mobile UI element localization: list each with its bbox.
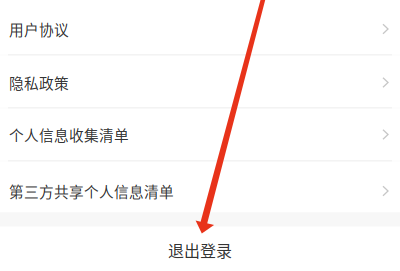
- staticText: 第三方共享个人信息清单: [9, 180, 174, 202]
- staticText: 用户协议: [9, 18, 69, 40]
- staticText: 隐私政策: [9, 72, 69, 93]
- button[interactable]: 第三方共享个人信息清单: [0, 161, 400, 212]
- staticText: 个人信息收集清单: [9, 124, 129, 145]
- staticText: 退出登录: [168, 238, 232, 262]
- button[interactable]: 退出登录: [0, 226, 400, 271]
- button[interactable]: 用户协议: [0, 0, 400, 54]
- button[interactable]: 个人信息收集清单: [0, 108, 400, 160]
- button[interactable]: 隐私政策: [0, 55, 400, 107]
